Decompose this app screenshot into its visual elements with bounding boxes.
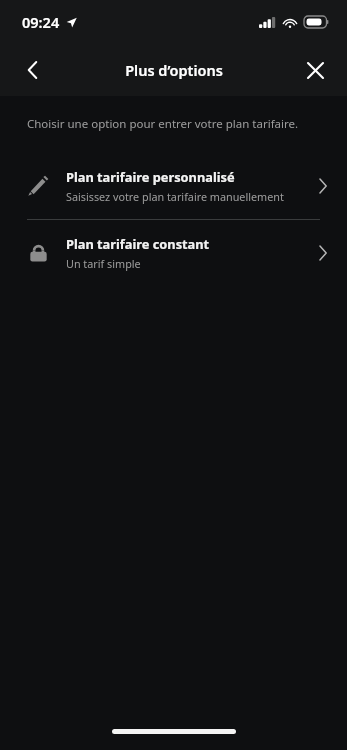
staticText: Choisir une option pour entrer votre pla… — [27, 116, 299, 132]
button[interactable]: Retour — [12, 50, 52, 90]
staticText: Plus d’options — [125, 60, 223, 80]
staticText: Un tarif simple — [66, 256, 141, 271]
staticText: Plan tarifaire constant — [66, 235, 210, 252]
staticText: Plan tarifaire personnalisé — [66, 168, 235, 185]
button[interactable]: Plan tarifaire personnalisé — [0, 153, 347, 219]
staticText: Saisissez votre plan tarifaire manuellem… — [66, 189, 284, 204]
staticText: 09:24 — [22, 12, 60, 32]
button[interactable]: Fermer — [295, 50, 335, 90]
button[interactable]: Plan tarifaire constant — [0, 220, 347, 286]
